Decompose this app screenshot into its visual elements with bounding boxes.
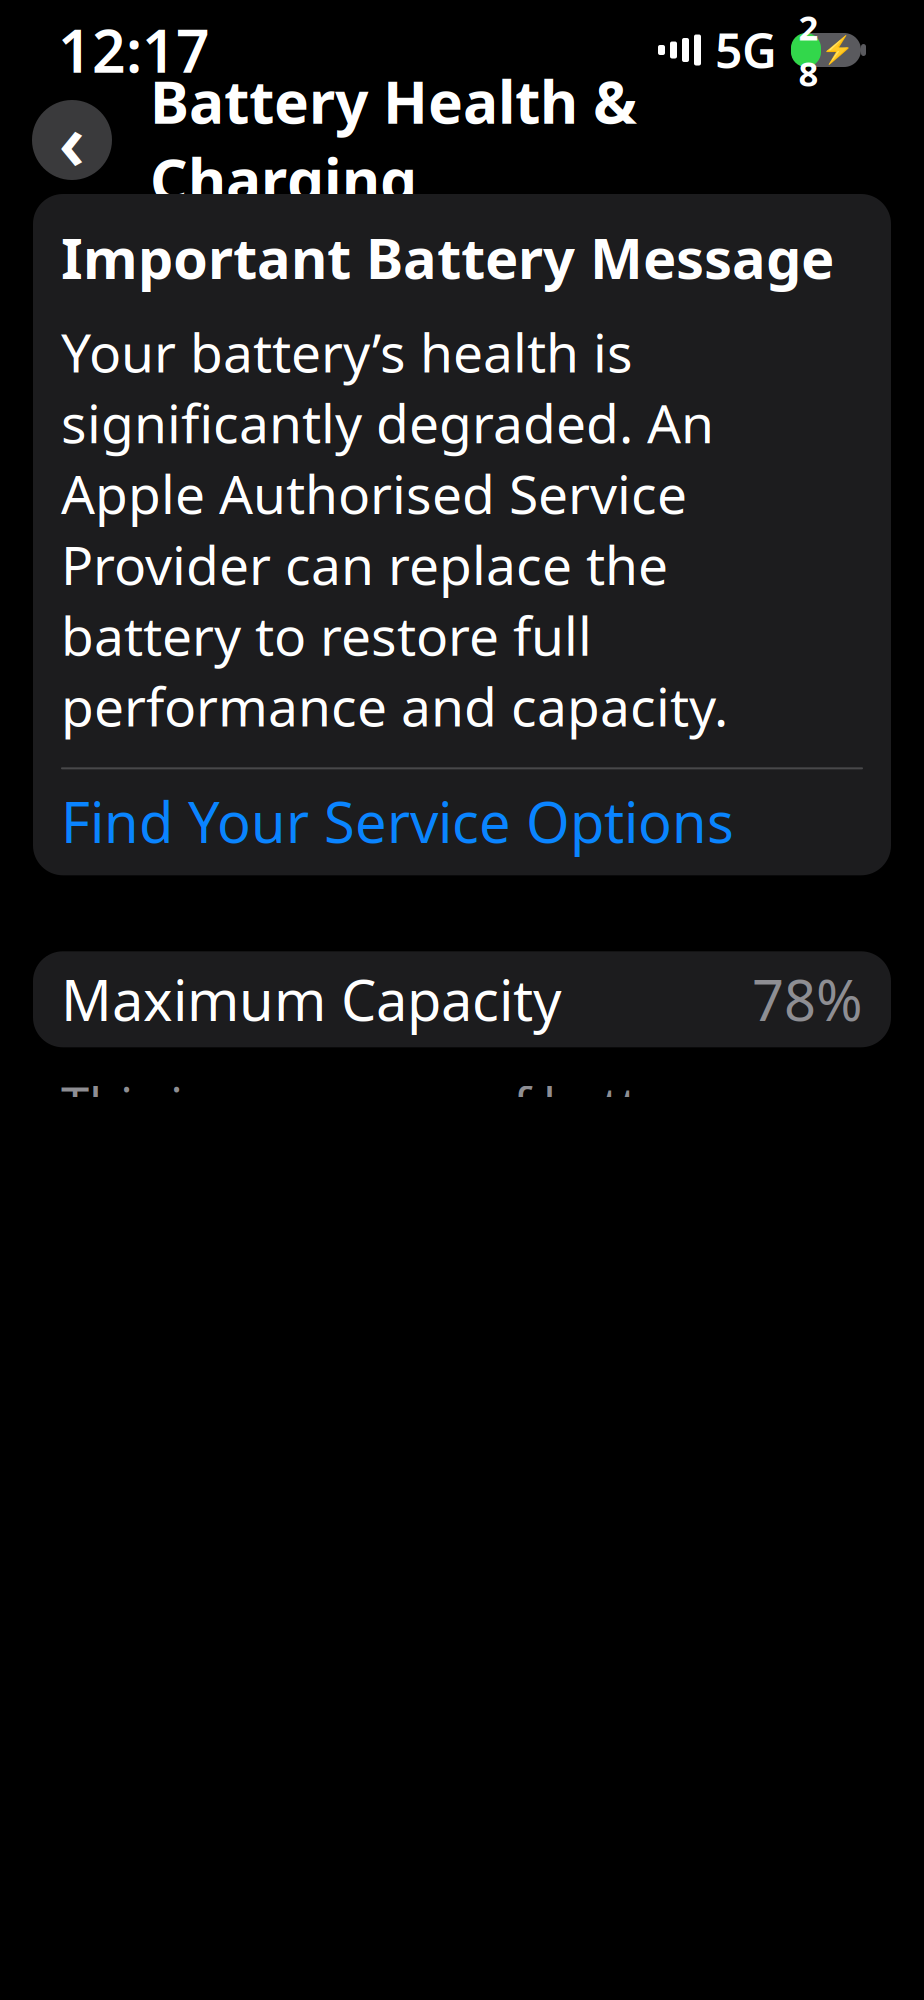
staticText: 78%: [752, 962, 863, 1036]
button[interactable]: Find Your Service Options: [61, 793, 863, 849]
staticText: Important Battery Message: [61, 220, 834, 294]
staticText: Find Your Service Options: [61, 784, 734, 858]
staticText: ⚡: [820, 35, 853, 65]
staticText: ‹: [58, 89, 85, 191]
staticText: 12:17: [58, 11, 210, 89]
staticText: Your battery’s health is significantly d…: [61, 316, 728, 741]
staticText: 28: [798, 4, 818, 96]
staticText: 5G: [715, 18, 777, 82]
button[interactable]: Back: [32, 100, 112, 180]
staticText: Battery Health & Charging: [150, 62, 637, 218]
staticText: This is a measure of battery capacity re…: [61, 1071, 841, 1408]
staticText: Maximum Capacity: [61, 962, 562, 1036]
